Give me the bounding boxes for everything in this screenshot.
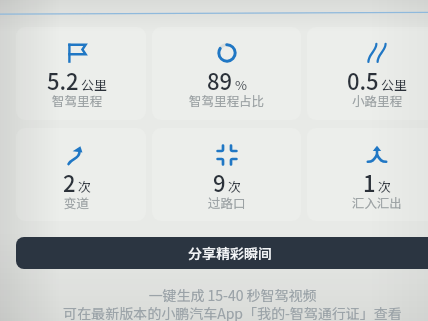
staticText: 过路口 [208, 193, 246, 211]
staticText: 2 [63, 166, 76, 198]
staticText: 9 [213, 166, 226, 198]
staticText: 分享精彩瞬间 [188, 243, 272, 263]
button[interactable]: 9 [165, 140, 289, 214]
staticText: 智驾里程 [52, 91, 103, 109]
staticText: 次 [378, 177, 392, 196]
button[interactable]: 5.2 [15, 38, 139, 112]
staticText: 一键生成 15-40 秒智驾视频 [148, 285, 317, 305]
staticText: 次 [228, 177, 242, 196]
staticText: 5.2 [47, 64, 79, 96]
button[interactable]: 0.5 [315, 38, 428, 112]
button[interactable]: 89 [165, 38, 289, 112]
staticText: 小路里程 [352, 91, 403, 109]
staticText: 次 [78, 177, 92, 196]
staticText: % [235, 75, 247, 94]
staticText: 公里 [381, 75, 408, 94]
staticText: 公里 [81, 75, 108, 94]
button[interactable]: 分享精彩瞬间 [16, 237, 428, 269]
staticText: 变道 [64, 193, 90, 211]
button[interactable]: 1 [315, 140, 428, 214]
staticText: 智驾里程占比 [189, 91, 265, 109]
staticText: 汇入汇出 [352, 193, 403, 211]
staticText: 可在最新版本的小鹏汽车App「我的-智驾通行证」查看 [63, 303, 402, 321]
staticText: 0.5 [347, 64, 379, 96]
button[interactable]: 2 [15, 140, 139, 214]
staticText: 1 [363, 166, 376, 198]
staticText: 89 [207, 64, 233, 96]
